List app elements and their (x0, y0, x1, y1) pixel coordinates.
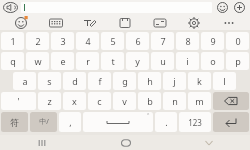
staticText: 符 (10, 117, 19, 128)
button[interactable]: 符 (1, 112, 28, 132)
staticText: v (122, 95, 127, 107)
button[interactable]: 6 (126, 32, 149, 50)
staticText: b (147, 95, 153, 107)
button[interactable]: Keyboard layout (45, 16, 67, 30)
button[interactable]: Stickers (10, 16, 32, 30)
button[interactable]: n (163, 92, 186, 110)
staticText: 7 (160, 35, 166, 47)
button[interactable]: v (113, 92, 136, 110)
button[interactable] (21, 2, 212, 13)
staticText: 6 (135, 35, 141, 47)
staticText: o (210, 55, 216, 67)
button[interactable]: 3 (51, 32, 74, 50)
button[interactable]: Clipboard (114, 16, 136, 30)
button[interactable]: 2 (26, 32, 49, 50)
staticText: m (195, 95, 204, 107)
button[interactable]: u (151, 52, 174, 70)
staticText: 123 (188, 117, 202, 128)
button[interactable]: e (51, 52, 74, 70)
staticText: , (69, 116, 72, 128)
button[interactable]: i (176, 52, 199, 70)
button[interactable]: x (63, 92, 86, 110)
staticText: f (98, 75, 102, 87)
staticText: w (34, 55, 42, 67)
button[interactable]: h (138, 72, 161, 90)
button[interactable]: 1 (1, 32, 24, 50)
staticText: g (122, 75, 128, 87)
button[interactable]: More options (218, 16, 240, 30)
staticText: 中/ (39, 117, 49, 127)
staticText: . (165, 116, 168, 128)
button[interactable]: z (38, 92, 61, 110)
button[interactable]: o (201, 52, 224, 70)
button[interactable]: Recent apps (0, 135, 84, 150)
button[interactable]: c (88, 92, 111, 110)
button[interactable]: 7 (151, 32, 174, 50)
button[interactable]: s (38, 72, 61, 90)
staticText: k (197, 75, 202, 87)
button[interactable]: f (88, 72, 111, 90)
button[interactable]: 9 (201, 32, 224, 50)
staticText: 1 (10, 35, 16, 47)
button[interactable]: Sound (4, 1, 17, 14)
staticText: 3 (60, 35, 66, 47)
staticText: h (147, 75, 153, 87)
button[interactable]: l (213, 72, 236, 90)
staticText: u (160, 55, 166, 67)
button[interactable]: r (76, 52, 99, 70)
button[interactable]: w (26, 52, 49, 70)
staticText: i (186, 55, 189, 67)
button[interactable]: j (163, 72, 186, 90)
button[interactable]: Back (167, 135, 250, 150)
staticText: 0 (235, 35, 241, 47)
button[interactable]: t (101, 52, 124, 70)
button[interactable]: Handwriting (79, 16, 101, 30)
staticText: s (47, 75, 52, 87)
staticText: c (97, 95, 102, 107)
button[interactable]: , (59, 112, 81, 132)
button[interactable]: b (138, 92, 161, 110)
button[interactable]: k (188, 72, 211, 90)
staticText: q (10, 55, 16, 67)
button[interactable]: 5 (101, 32, 124, 50)
button[interactable]: . (155, 112, 177, 132)
staticText: n (172, 95, 178, 107)
button[interactable]: Settings (183, 16, 205, 30)
staticText: x (72, 95, 77, 107)
staticText: ' (17, 95, 20, 107)
button[interactable]: g (113, 72, 136, 90)
button[interactable]: ' (1, 92, 36, 110)
button[interactable]: 中/ (30, 112, 57, 132)
staticText: 5 (110, 35, 116, 47)
button[interactable]: 123 (179, 112, 211, 132)
button[interactable]: Enter (213, 112, 249, 132)
staticText: r (86, 55, 90, 67)
button[interactable]: m (188, 92, 211, 110)
button[interactable]: Add (233, 1, 246, 14)
staticText: y (135, 55, 140, 67)
staticText: z (47, 95, 52, 107)
staticText: d (72, 75, 78, 87)
button[interactable]: p (226, 52, 249, 70)
button[interactable]: Space (83, 112, 153, 132)
button[interactable]: 0 (226, 32, 249, 50)
staticText: ⌃ (146, 112, 151, 118)
button[interactable]: Backspace (213, 92, 249, 110)
button[interactable]: Translate (149, 16, 171, 30)
button[interactable]: Emoji (216, 1, 229, 14)
staticText: t (111, 55, 115, 67)
staticText: 9 (210, 35, 216, 47)
staticText: j (173, 75, 176, 87)
staticText: a (22, 75, 28, 87)
button[interactable]: 8 (176, 32, 199, 50)
button[interactable]: 4 (76, 32, 99, 50)
button[interactable]: a (13, 72, 36, 90)
staticText: 2 (35, 35, 41, 47)
button[interactable]: d (63, 72, 86, 90)
button[interactable]: q (1, 52, 24, 70)
staticText: l (223, 75, 226, 87)
staticText: p (235, 55, 241, 67)
button[interactable]: Home (84, 135, 167, 150)
staticText: 4 (85, 35, 91, 47)
button[interactable]: y (126, 52, 149, 70)
